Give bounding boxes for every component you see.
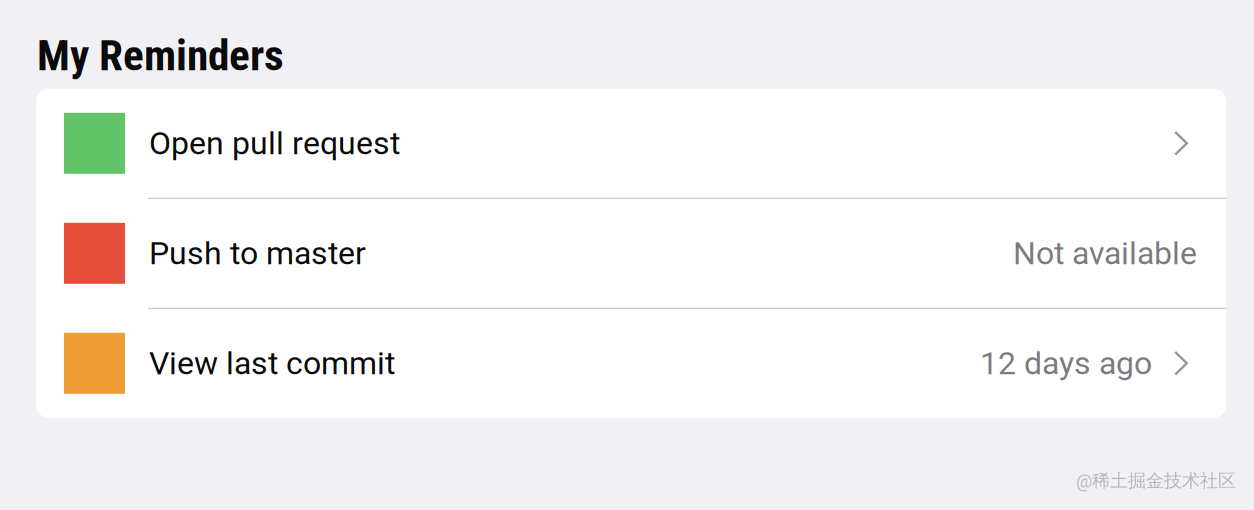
button[interactable]: Open pull request — [36, 89, 1226, 198]
staticText: Not available — [1013, 234, 1197, 272]
button[interactable]: View last commit — [36, 309, 1226, 418]
button[interactable]: Push to master — [36, 199, 1226, 308]
staticText: View last commit — [149, 344, 395, 382]
staticText: Push to master — [149, 234, 366, 272]
staticText: Open pull request — [149, 124, 400, 162]
staticText: @稀土掘金技术社区 — [1076, 469, 1236, 492]
staticText: My Reminders — [37, 30, 284, 81]
staticText: 12 days ago — [980, 344, 1152, 382]
